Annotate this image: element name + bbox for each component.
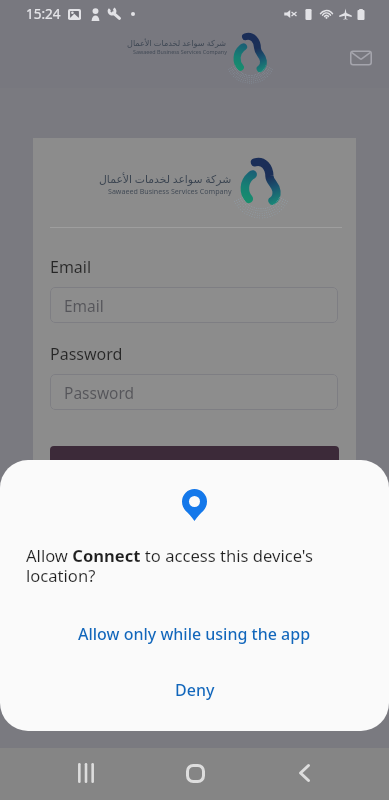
staticText: Email [64, 295, 104, 316]
staticText: Sawaeed Business Services Company [108, 186, 232, 196]
staticText: Password [50, 343, 123, 365]
button[interactable]: Email [50, 287, 338, 323]
staticText: Password [64, 382, 135, 403]
button[interactable]: Password [50, 374, 338, 410]
staticText: Login [175, 456, 215, 476]
staticText: Allow Connect to access this device's lo… [26, 544, 346, 587]
button[interactable]: Home [171, 749, 219, 797]
staticText: Email [50, 256, 92, 278]
button[interactable]: Allow only while using the app [0, 614, 389, 654]
button[interactable]: Recents [62, 749, 110, 797]
staticText: Allow only while using the app [78, 623, 311, 645]
staticText: 15:24 [26, 5, 61, 23]
staticText: شركة سواعد لخدمات الأعمال [127, 37, 227, 48]
staticText: Deny [175, 679, 215, 701]
button[interactable]: Deny [0, 670, 389, 710]
staticText: Sawaeed Business Services Company [133, 48, 227, 55]
button[interactable]: Login [50, 446, 339, 486]
button[interactable]: Messages [343, 40, 379, 76]
staticText: شركة سواعد لخدمات الأعمال [99, 171, 232, 186]
button[interactable]: Back [280, 749, 328, 797]
